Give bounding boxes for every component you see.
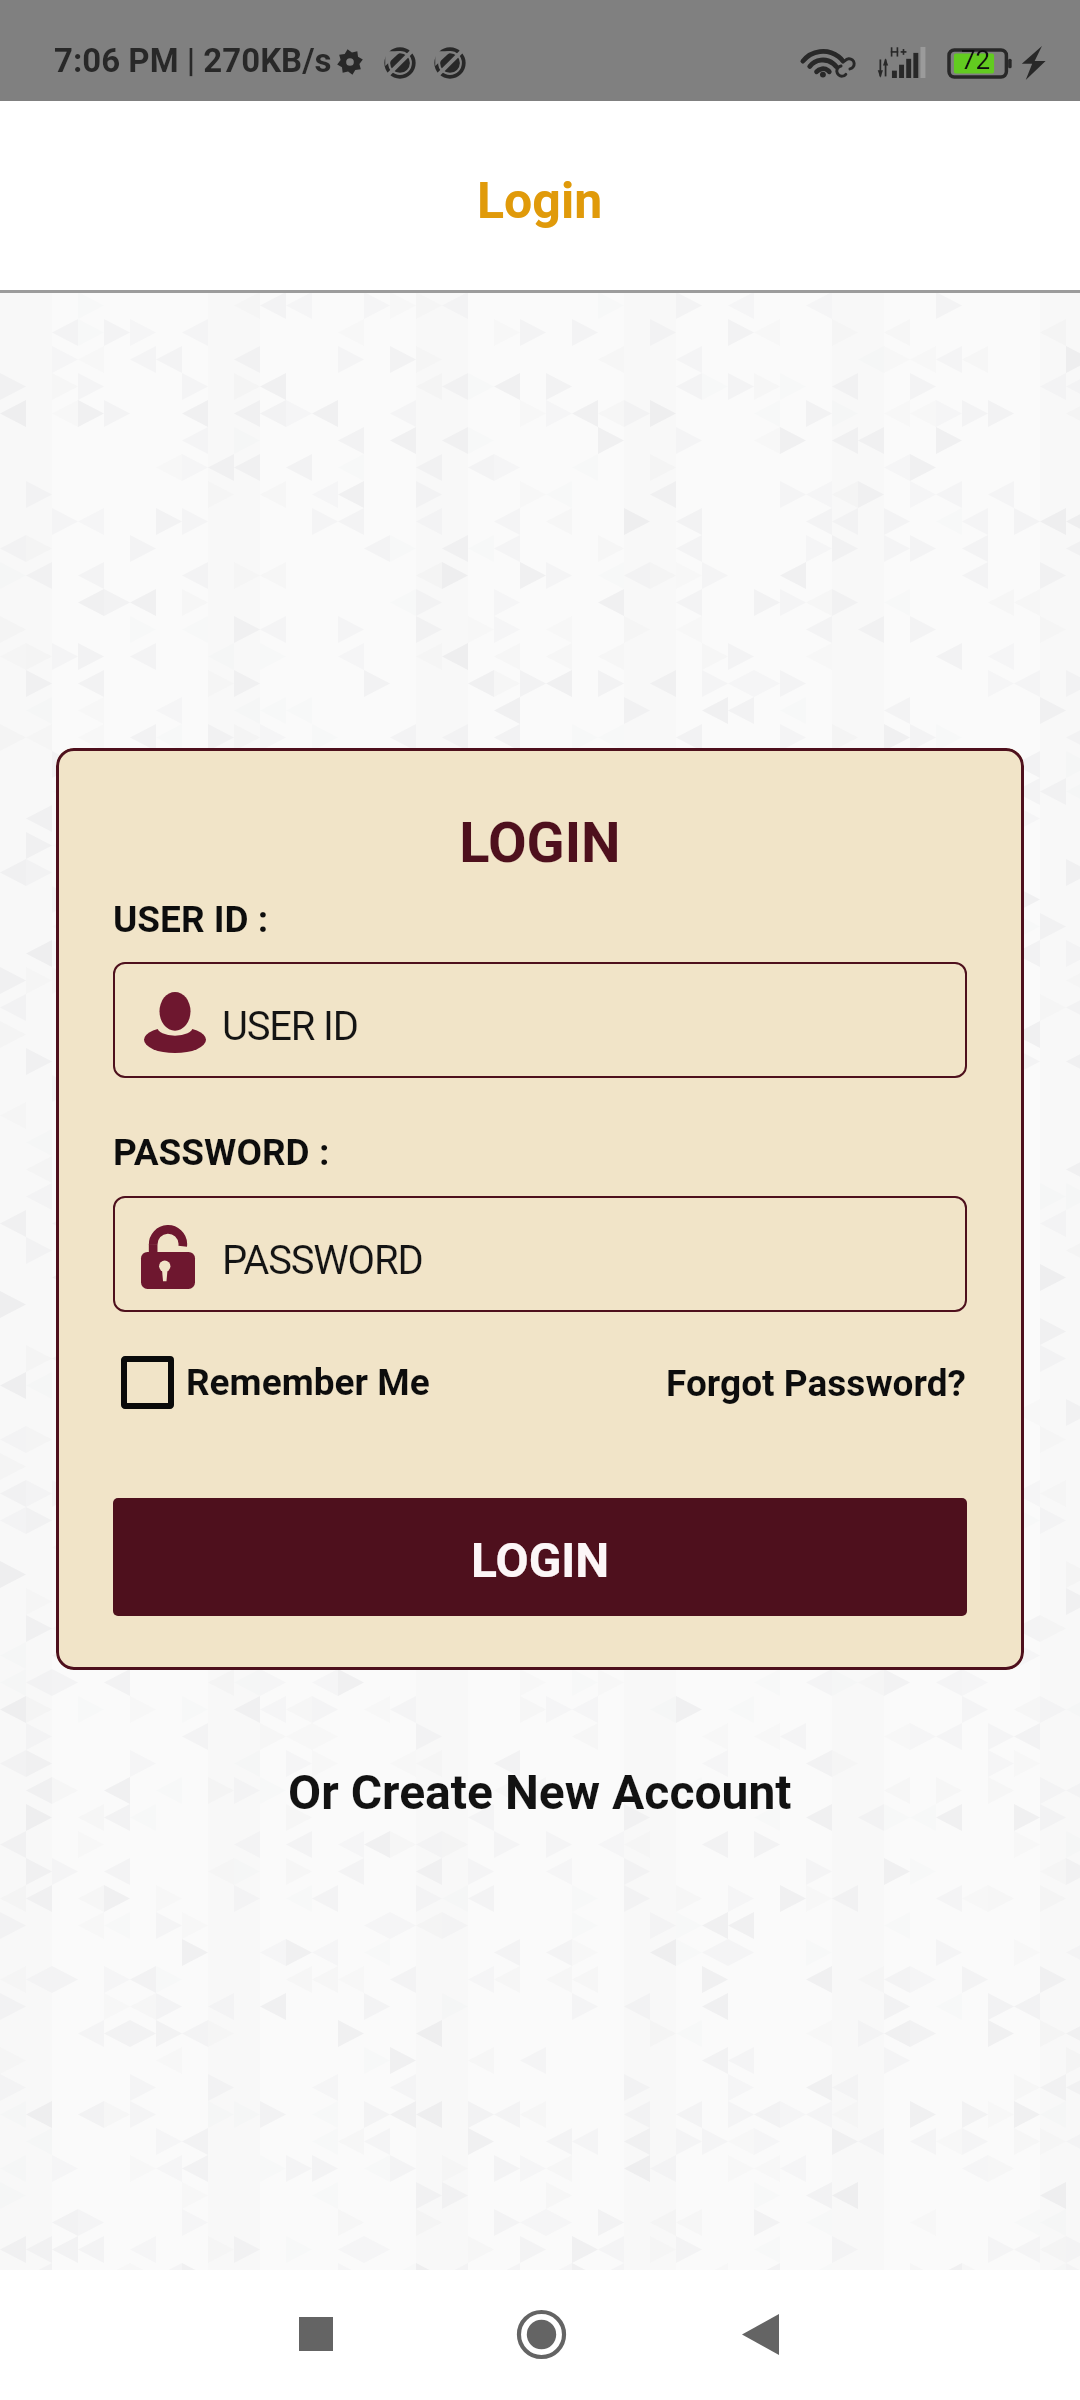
staticText: 7:06 PM | 270KB/s xyxy=(54,41,332,80)
button[interactable]: Or Create New Account xyxy=(280,1758,800,1826)
staticText: PASSWORD : xyxy=(113,1131,330,1174)
staticText: LOGIN xyxy=(471,1532,610,1588)
button[interactable]: Remember Me xyxy=(121,1356,430,1409)
button[interactable]: Home xyxy=(496,2289,586,2379)
button[interactable]: Recent apps xyxy=(271,2289,361,2379)
staticText: Remember Me xyxy=(186,1361,430,1404)
staticText: USER ID : xyxy=(113,898,269,941)
staticText: 72 xyxy=(961,45,991,72)
staticText: USER ID xyxy=(222,1003,358,1050)
staticText: LOGIN xyxy=(56,810,1024,876)
button[interactable]: Back xyxy=(715,2289,805,2379)
button[interactable]: Forgot Password? xyxy=(666,1362,966,1405)
button[interactable]: LOGIN xyxy=(113,1498,967,1616)
staticText: Login xyxy=(477,172,603,231)
staticText: PASSWORD xyxy=(222,1237,423,1284)
button[interactable]: USER ID xyxy=(113,962,967,1078)
button[interactable]: PASSWORD xyxy=(113,1196,967,1312)
